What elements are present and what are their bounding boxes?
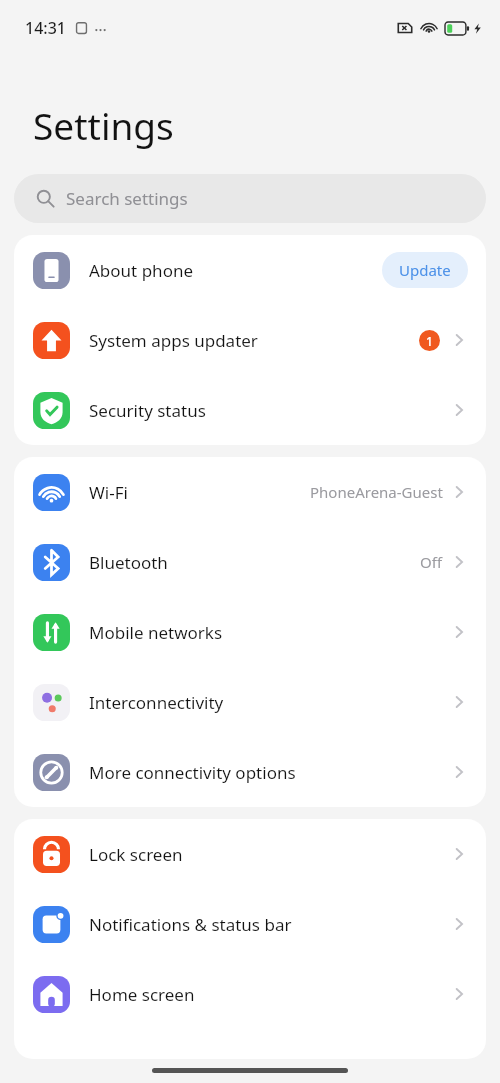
staticText: System apps updater: [89, 329, 419, 352]
staticText: About phone: [89, 259, 382, 282]
button[interactable]: System apps updater: [14, 305, 486, 375]
button[interactable]: Bluetooth: [14, 527, 486, 597]
staticText: Mobile networks: [89, 621, 450, 644]
button[interactable]: Home screen: [14, 959, 486, 1029]
staticText: 1: [426, 333, 433, 349]
button[interactable]: Search: [14, 174, 486, 223]
staticText: More connectivity options: [89, 761, 450, 784]
staticText: Off: [420, 552, 443, 572]
button[interactable]: Wi-Fi: [14, 457, 486, 527]
staticText: Search settings: [66, 187, 188, 210]
button[interactable]: Update: [382, 252, 468, 288]
button[interactable]: Notifications & status bar: [14, 889, 486, 959]
staticText: Interconnectivity: [89, 691, 450, 714]
staticText: Bluetooth: [89, 551, 420, 574]
staticText: Home screen: [89, 983, 450, 1006]
staticText: Settings: [33, 100, 174, 150]
staticText: Notifications & status bar: [89, 913, 450, 936]
staticText: 14:31: [25, 17, 66, 39]
other: Search: [36, 189, 55, 208]
button[interactable]: About phone: [14, 235, 486, 305]
staticText: Update: [399, 260, 451, 280]
staticText: PhoneArena-Guest: [310, 482, 443, 502]
staticText: Security status: [89, 399, 450, 422]
staticText: Lock screen: [89, 843, 450, 866]
button[interactable]: Lock screen: [14, 819, 486, 889]
button[interactable]: Interconnectivity: [14, 667, 486, 737]
button[interactable]: More connectivity options: [14, 737, 486, 807]
button[interactable]: Security status: [14, 375, 486, 445]
button[interactable]: Mobile networks: [14, 597, 486, 667]
staticText: Wi-Fi: [89, 481, 310, 504]
